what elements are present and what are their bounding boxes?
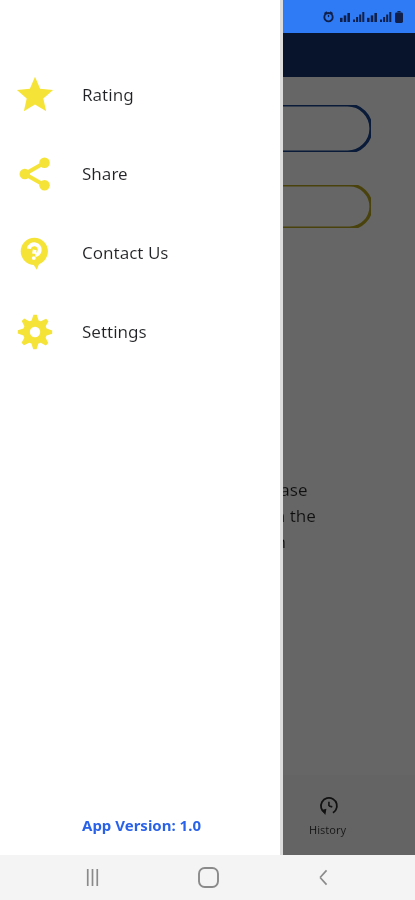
staticText: Share <box>82 162 128 185</box>
staticText: Rating <box>82 83 134 106</box>
button[interactable]: Back <box>299 855 347 900</box>
button[interactable]: Rating <box>0 55 283 134</box>
staticText: Records <box>184 822 226 837</box>
button[interactable]: App Version: 1.0 <box>0 795 283 855</box>
button[interactable]: Contact Us <box>0 213 283 292</box>
button[interactable]: Share <box>0 134 283 213</box>
staticText: Settings <box>82 320 147 343</box>
button[interactable]: Get Started <box>45 105 371 152</box>
button[interactable]: Home <box>52 785 116 845</box>
button[interactable]: Our Services <box>45 185 371 228</box>
staticText: History <box>309 822 347 837</box>
button[interactable]: Settings <box>0 292 283 371</box>
staticText: No records found. Please add a record or… <box>99 478 316 553</box>
staticText: App Version: 1.0 <box>82 815 201 835</box>
button[interactable]: History <box>293 785 363 845</box>
button[interactable]: Records <box>168 785 242 845</box>
button[interactable]: Home <box>184 855 232 900</box>
staticText: Contact Us <box>82 241 169 264</box>
staticText: Home <box>68 822 100 837</box>
button[interactable]: Recent apps <box>68 855 116 900</box>
